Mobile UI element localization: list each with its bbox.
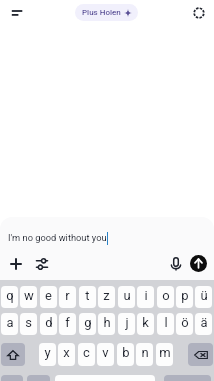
staticText: f — [65, 315, 70, 330]
button[interactable]: f — [59, 313, 76, 335]
button[interactable]: q — [1, 286, 18, 308]
staticText: Plus Holen — [82, 8, 121, 17]
staticText: s — [25, 315, 32, 330]
button[interactable]: l — [157, 313, 174, 335]
button[interactable]: ö — [176, 313, 193, 335]
staticText: ö — [181, 315, 189, 330]
button[interactable]: Enter — [164, 375, 211, 381]
staticText: x — [63, 345, 70, 360]
button[interactable]: t — [79, 286, 96, 308]
staticText: l — [164, 315, 168, 330]
staticText: v — [102, 345, 109, 360]
staticText: w — [24, 288, 34, 303]
button[interactable]: g — [79, 313, 96, 335]
staticText: c — [83, 345, 90, 360]
staticText: m — [159, 345, 171, 360]
button[interactable]: h — [98, 313, 115, 335]
button[interactable]: New chat — [190, 4, 208, 22]
button[interactable]: a — [1, 313, 18, 335]
button[interactable]: p — [176, 286, 193, 308]
button[interactable]: z — [98, 286, 115, 308]
staticText: p — [181, 288, 189, 303]
button[interactable]: , — [27, 375, 50, 381]
staticText: e — [45, 288, 52, 303]
button[interactable]: Space — [55, 375, 155, 381]
button[interactable]: Voice input — [166, 254, 186, 274]
staticText: j — [125, 315, 129, 330]
staticText: z — [103, 288, 110, 303]
staticText: I'm no good without you — [8, 232, 107, 243]
button[interactable]: e — [40, 286, 57, 308]
button[interactable]: Shift — [1, 343, 25, 366]
button[interactable]: x — [58, 343, 75, 366]
staticText: t — [85, 288, 90, 303]
staticText: k — [142, 315, 149, 330]
button[interactable]: Symbols — [1, 375, 23, 381]
button[interactable]: b — [117, 343, 134, 366]
button[interactable]: o — [157, 286, 174, 308]
button[interactable]: y — [39, 343, 56, 366]
staticText: r — [65, 288, 70, 303]
button[interactable]: Menu — [6, 2, 28, 24]
button[interactable]: m — [156, 343, 173, 366]
staticText: q — [6, 288, 14, 303]
staticText: b — [122, 345, 130, 360]
staticText: y — [44, 345, 51, 360]
staticText: i — [144, 288, 148, 303]
staticText: h — [103, 315, 111, 330]
button[interactable]: Tools — [32, 254, 52, 274]
button[interactable]: ä — [195, 313, 212, 335]
staticText: o — [162, 288, 170, 303]
button[interactable]: v — [97, 343, 114, 366]
button[interactable]: u — [118, 286, 135, 308]
button[interactable]: d — [40, 313, 57, 335]
button[interactable]: c — [78, 343, 95, 366]
button[interactable]: n — [136, 343, 153, 366]
button[interactable]: r — [59, 286, 76, 308]
button[interactable]: k — [137, 313, 154, 335]
button[interactable]: w — [20, 286, 37, 308]
button[interactable]: s — [20, 313, 37, 335]
staticText: n — [141, 345, 149, 360]
staticText: u — [123, 288, 131, 303]
button[interactable]: Plus Holen — [75, 4, 138, 21]
staticText: ä — [200, 315, 208, 330]
button[interactable]: Backspace — [188, 343, 213, 366]
button[interactable]: Add — [6, 254, 26, 274]
staticText: g — [84, 315, 92, 330]
button[interactable]: j — [118, 313, 135, 335]
staticText: ü — [200, 288, 208, 303]
button[interactable]: ü — [195, 286, 212, 308]
button[interactable]: i — [137, 286, 154, 308]
button[interactable]: Send — [190, 255, 207, 272]
staticText: a — [6, 315, 14, 330]
staticText: d — [45, 315, 53, 330]
